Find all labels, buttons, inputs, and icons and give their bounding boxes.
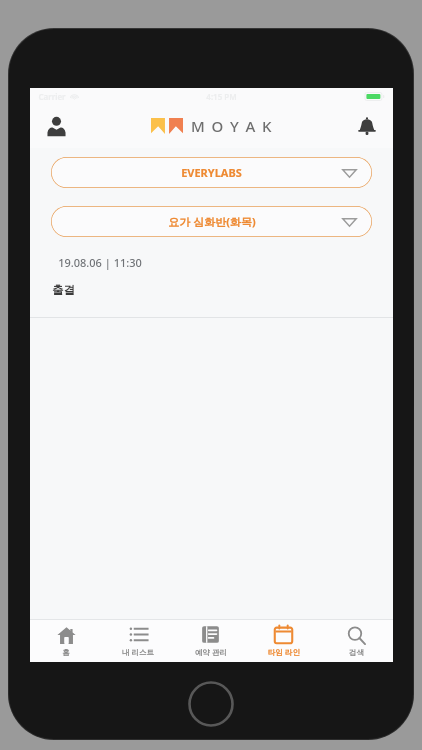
staticText: 요가 심화반(화목) <box>168 214 256 229</box>
button[interactable]: 요가 심화반(화목) <box>51 206 372 237</box>
staticText: M O Y A K <box>191 116 273 136</box>
button[interactable]: 홈 <box>30 620 102 662</box>
button[interactable]: 검색 <box>320 620 393 662</box>
button[interactable]: 19.08.06 | 11:30 <box>30 255 393 317</box>
button[interactable]: Profile <box>38 108 74 144</box>
staticText: 내 리스트 <box>122 647 154 657</box>
button[interactable]: Notifications <box>349 108 385 144</box>
staticText: EVERYLABS <box>181 165 242 180</box>
staticText: Carrier <box>38 91 66 102</box>
staticText: 타임 라인 <box>268 647 300 657</box>
button[interactable]: 내 리스트 <box>102 620 174 662</box>
button[interactable]: Home <box>188 681 234 727</box>
button[interactable]: 예약 관리 <box>174 620 247 662</box>
button[interactable]: 타임 라인 <box>247 620 320 662</box>
staticText: 홈 <box>62 648 70 657</box>
staticText: 검색 <box>349 648 364 657</box>
staticText: 19.08.06 | 11:30 <box>58 255 142 270</box>
button[interactable]: EVERYLABS <box>51 157 372 188</box>
staticText: 4:15 PM <box>206 91 237 102</box>
staticText: 출결 <box>52 283 75 297</box>
staticText: 예약 관리 <box>195 647 227 657</box>
